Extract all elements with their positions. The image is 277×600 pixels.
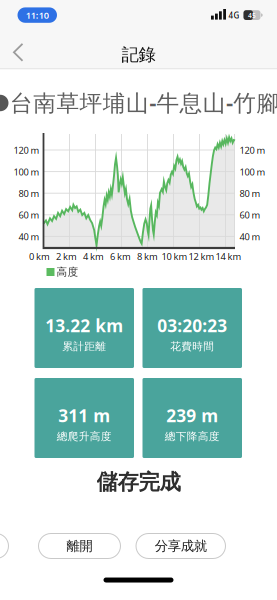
staticText: 100 m (239, 166, 265, 178)
staticText: 離開 (66, 538, 92, 554)
staticText: 台南草坪埔山-牛息山-竹腳寮山 (10, 87, 277, 117)
staticText: 分享成就 (155, 538, 207, 554)
staticText: 10 km (161, 250, 187, 263)
staticText: 記錄 (121, 44, 155, 65)
staticText: 80 m (18, 187, 39, 200)
staticText: 2 km (56, 250, 77, 263)
staticText: 累計距離 (62, 340, 106, 353)
staticText: 239 m (166, 404, 218, 427)
staticText: 0 km (29, 250, 50, 263)
staticText: 03:20:23 (157, 314, 227, 337)
staticText: 120 m (13, 144, 39, 156)
staticText: 14 km (215, 250, 241, 263)
staticText: 60 m (239, 209, 260, 221)
staticText: 11:10 (26, 9, 49, 21)
staticText: 高度 (56, 265, 78, 279)
staticText: 儲存完成 (96, 469, 180, 495)
staticText: 60 m (18, 209, 39, 221)
staticText: 8 km (137, 250, 158, 263)
staticText: 12 km (188, 250, 214, 263)
staticText: 120 m (239, 144, 265, 156)
staticText: 總下降高度 (165, 430, 220, 443)
staticText: 6 km (110, 250, 131, 263)
staticText: 80 m (239, 187, 260, 200)
staticText: 100 m (13, 166, 39, 178)
staticText: 4 km (83, 250, 104, 263)
staticText: 40 m (18, 230, 39, 243)
button[interactable]: 11:10 (17, 7, 57, 23)
staticText: 40 m (239, 230, 260, 243)
staticText: 13.22 km (45, 314, 123, 337)
button[interactable] (0, 533, 9, 559)
button[interactable]: 分享成就 (135, 533, 226, 559)
staticText: 總爬升高度 (57, 430, 112, 443)
staticText: 311 m (58, 404, 110, 427)
button[interactable]: 離開 (38, 533, 121, 559)
staticText: 4G (228, 10, 239, 21)
staticText: 花費時間 (170, 340, 214, 353)
staticText: 45 (248, 11, 256, 20)
button[interactable] (13, 39, 37, 65)
